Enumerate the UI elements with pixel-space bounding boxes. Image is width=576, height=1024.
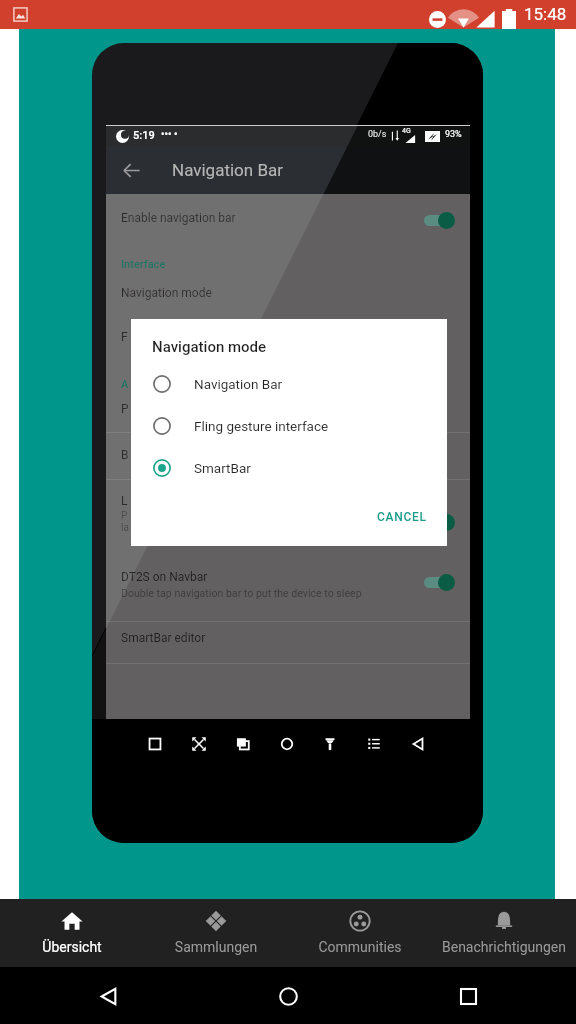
staticText: Navigation mode [121, 286, 212, 300]
staticText: CANCEL [377, 510, 427, 524]
button[interactable]: Navigation Bar [131, 363, 447, 405]
button[interactable]: CANCEL [370, 501, 434, 533]
button[interactable]: Sammlungen [144, 899, 288, 967]
button[interactable] [424, 572, 455, 592]
staticText: Double tap navigation bar to put the dev… [121, 587, 362, 599]
button[interactable]: List [361, 731, 387, 757]
staticText: SmartBar editor [121, 631, 206, 645]
staticText: F [121, 330, 128, 344]
button[interactable]: Navigation mode [131, 319, 447, 546]
staticText: ••• • [161, 129, 178, 141]
staticText: Enable navigation bar [121, 211, 236, 225]
button[interactable]: Multi window [230, 731, 256, 757]
staticText: Sammlungen [144, 939, 288, 955]
button[interactable]: SmartBar [131, 447, 447, 489]
staticText: Fling gesture interface [194, 418, 329, 434]
staticText: DT2S on Navbar [121, 570, 208, 584]
staticText: L [121, 494, 128, 508]
button[interactable]: Communities [288, 899, 432, 967]
button[interactable] [424, 210, 455, 230]
button[interactable]: Recents [142, 731, 168, 757]
button[interactable]: Fling gesture interface [131, 405, 447, 447]
button[interactable]: Home [268, 976, 308, 1016]
button[interactable]: Benachrichtigungen [432, 899, 576, 967]
button[interactable]: Flashlight [317, 731, 343, 757]
button[interactable]: Home [274, 731, 300, 757]
staticText: Communities [288, 939, 432, 955]
staticText: 15:48 [524, 4, 567, 24]
staticText: Übersicht [0, 939, 144, 955]
button[interactable]: Enable navigation bar [19, 29, 555, 899]
staticText: 4G [402, 127, 411, 135]
staticText: A [121, 378, 129, 391]
staticText: P [121, 510, 128, 522]
staticText: 0b/s [368, 129, 387, 140]
other: Screenshot notification [13, 7, 28, 22]
staticText: SmartBar [194, 460, 251, 476]
button[interactable]: Back [405, 731, 431, 757]
button[interactable] [424, 512, 455, 532]
staticText: B [121, 448, 129, 462]
button[interactable]: Back [88, 976, 128, 1016]
staticText: Navigation Bar [172, 160, 284, 180]
button[interactable]: Recents [448, 976, 488, 1016]
button[interactable]: Back [123, 162, 140, 179]
button[interactable]: Expand [186, 731, 212, 757]
staticText: Interface [121, 258, 166, 271]
staticText: Navigation Bar [194, 376, 283, 392]
staticText: Benachrichtigungen [432, 939, 576, 955]
button[interactable]: Übersicht [0, 899, 144, 967]
staticText: P [121, 402, 129, 416]
staticText: 93% [445, 129, 462, 140]
staticText: la [121, 522, 129, 534]
staticText: 5:19 [133, 129, 155, 142]
staticText: Navigation mode [152, 338, 267, 356]
